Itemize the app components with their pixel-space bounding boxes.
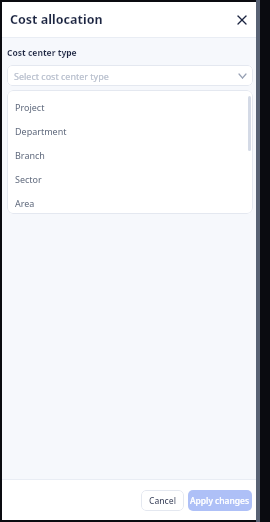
staticText: Cost allocation — [10, 11, 103, 28]
button[interactable]: Branch — [7, 143, 253, 167]
staticText: Project — [15, 101, 45, 113]
button[interactable]: Select cost center type — [7, 65, 253, 86]
button[interactable]: Apply changes — [188, 490, 252, 511]
staticText: Cancel — [149, 495, 176, 507]
staticText: Cost center type — [7, 47, 77, 59]
button[interactable]: Area — [7, 191, 253, 214]
staticText: Branch — [15, 149, 45, 161]
button[interactable]: Project — [7, 95, 253, 119]
button[interactable]: Sector — [7, 167, 253, 191]
staticText: Area — [15, 197, 35, 209]
staticText: Department — [15, 125, 67, 137]
staticText: Select cost center type — [14, 70, 109, 82]
staticText: Sector — [15, 173, 42, 185]
staticText: Apply changes — [190, 495, 250, 507]
button[interactable]: Department — [7, 119, 253, 143]
button[interactable]: Cancel — [141, 490, 184, 511]
button[interactable]: Close — [231, 9, 253, 31]
